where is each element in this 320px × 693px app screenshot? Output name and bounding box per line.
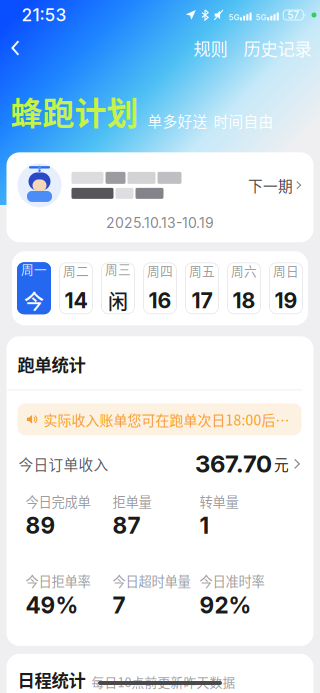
button[interactable]: 周二 <box>59 262 93 314</box>
staticText: 周日 <box>273 261 299 279</box>
staticText: 周二 <box>63 261 89 279</box>
staticText: 今日完成单 <box>25 491 90 511</box>
staticText: 49% <box>25 591 78 619</box>
button[interactable]: 周五 <box>185 262 219 314</box>
staticText: 跑单统计 <box>17 351 85 376</box>
staticText: 今 <box>24 286 44 315</box>
staticText: 历史记录 <box>243 35 311 61</box>
staticText: 单多好送 时间自由 <box>147 110 273 131</box>
staticText: 14 <box>64 287 87 313</box>
staticText: 89 <box>25 512 55 539</box>
staticText: 规则 <box>193 35 227 61</box>
button[interactable]: 周一 <box>17 262 51 314</box>
staticText: 今日拒单率 <box>25 571 90 590</box>
staticText: 7 <box>112 591 125 619</box>
staticText: 今日准时率 <box>199 571 264 590</box>
staticText: 21:53 <box>21 4 66 25</box>
staticText: 周六 <box>231 261 257 279</box>
staticText: 57 <box>287 9 299 21</box>
staticText: 元 <box>274 453 289 474</box>
staticText: 闲 <box>108 286 128 315</box>
button[interactable]: 历史记录 <box>235 30 320 66</box>
staticText: 5G <box>256 12 267 22</box>
staticText: 今日超时单量 <box>112 571 190 590</box>
staticText: 实际收入账单您可在跑单次日18:00后于钱包 <box>43 409 292 429</box>
staticText: 日程统计 <box>17 667 85 692</box>
button[interactable]: 今日订单收入 <box>6 435 313 491</box>
button[interactable]: 规则 <box>183 30 235 66</box>
staticText: 17 <box>191 287 212 313</box>
staticText: 16 <box>148 287 171 313</box>
staticText: 2025.10.13-10.19 <box>106 214 214 231</box>
staticText: 87 <box>112 512 140 539</box>
staticText: 周五 <box>189 261 215 279</box>
button[interactable]: 周四 <box>143 262 177 314</box>
staticText: 周三 <box>105 260 131 278</box>
button[interactable]: 周日 <box>269 262 303 314</box>
staticText: 19 <box>274 287 297 313</box>
staticText: 今日订单收入 <box>18 453 108 474</box>
staticText: 蜂跑计划 <box>10 88 138 134</box>
staticText: 5G <box>228 12 239 22</box>
staticText: 拒单量 <box>112 491 151 511</box>
staticText: 下一期 <box>248 175 293 196</box>
staticText: 18 <box>232 287 255 313</box>
button[interactable]: 周三 <box>101 262 135 314</box>
staticText: 周一 <box>21 260 47 278</box>
staticText: 转单量 <box>199 491 238 511</box>
staticText: 367.70 <box>195 449 272 478</box>
button[interactable]: Back <box>0 30 36 66</box>
button[interactable]: 下一期 <box>242 175 301 196</box>
staticText: 1 <box>199 512 209 539</box>
staticText: 每日10点前更新昨天数据 <box>91 673 235 691</box>
button[interactable]: 周六 <box>227 262 261 314</box>
staticText: 92% <box>199 591 251 619</box>
staticText: 周四 <box>147 261 173 279</box>
